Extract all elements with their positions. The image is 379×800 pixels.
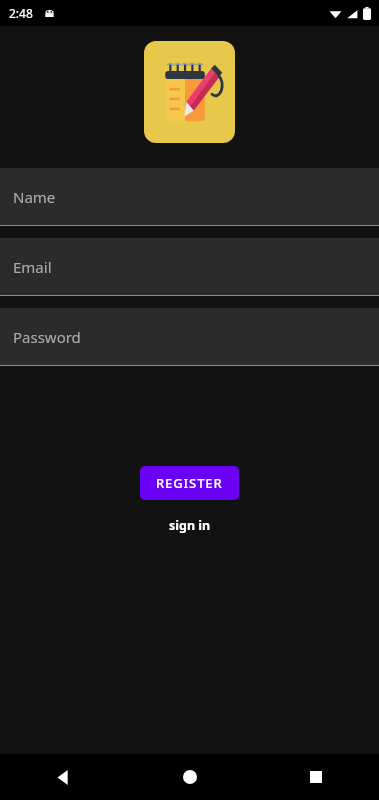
staticText: sign in bbox=[169, 517, 211, 534]
button[interactable]: Home bbox=[127, 754, 253, 800]
button[interactable]: REGISTER bbox=[140, 466, 239, 500]
staticText: 2:48 bbox=[9, 5, 33, 21]
button[interactable]: Back bbox=[0, 754, 127, 800]
button[interactable]: sign in bbox=[159, 514, 221, 537]
staticText: Password bbox=[13, 327, 81, 347]
staticText: Email bbox=[13, 257, 52, 277]
button[interactable]: Recents bbox=[253, 754, 379, 800]
button[interactable]: Name bbox=[0, 168, 379, 226]
staticText: Name bbox=[13, 187, 56, 207]
button[interactable]: Email bbox=[0, 238, 379, 296]
staticText: REGISTER bbox=[156, 474, 223, 492]
button[interactable]: Password bbox=[0, 308, 379, 366]
